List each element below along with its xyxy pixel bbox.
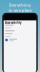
staticText: Everything — [9, 2, 31, 7]
staticText: Accessibility — [5, 21, 22, 24]
staticText: in one place — [8, 7, 31, 13]
